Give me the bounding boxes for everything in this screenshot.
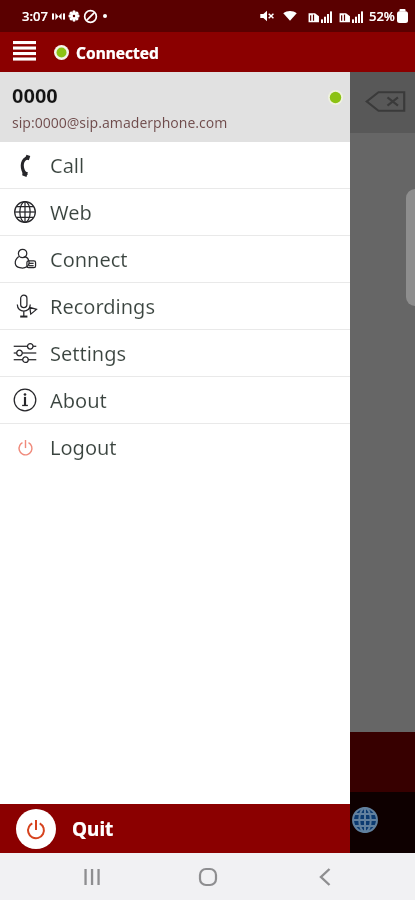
- button[interactable]: Settings: [0, 330, 350, 376]
- staticText: Settings: [50, 340, 127, 367]
- button[interactable]: Recent apps: [70, 855, 114, 899]
- staticText: Connected: [76, 42, 159, 63]
- staticText: Call: [50, 152, 85, 179]
- button[interactable]: Quit: [0, 804, 350, 853]
- staticText: sip:0000@sip.amaderphone.com: [12, 113, 228, 132]
- staticText: Connect: [50, 246, 128, 273]
- staticText: 0000: [12, 82, 58, 109]
- button[interactable]: Call: [0, 142, 350, 188]
- staticText: Recordings: [50, 293, 155, 320]
- staticText: About: [50, 387, 107, 414]
- staticText: Web: [50, 199, 92, 226]
- button[interactable]: Open navigation menu: [0, 32, 48, 72]
- staticText: Quit: [72, 816, 114, 842]
- button[interactable]: Connect: [0, 236, 350, 282]
- button[interactable]: Recordings: [0, 283, 350, 329]
- button[interactable]: Web: [0, 189, 350, 235]
- button[interactable]: 0000: [0, 72, 350, 142]
- button[interactable]: Back: [303, 855, 347, 899]
- button[interactable]: Logout: [0, 424, 350, 470]
- staticText: 3:07: [22, 7, 48, 25]
- staticText: Logout: [50, 434, 117, 461]
- button[interactable]: About: [0, 377, 350, 423]
- button[interactable]: Home: [186, 855, 230, 899]
- staticText: 52%: [369, 7, 395, 25]
